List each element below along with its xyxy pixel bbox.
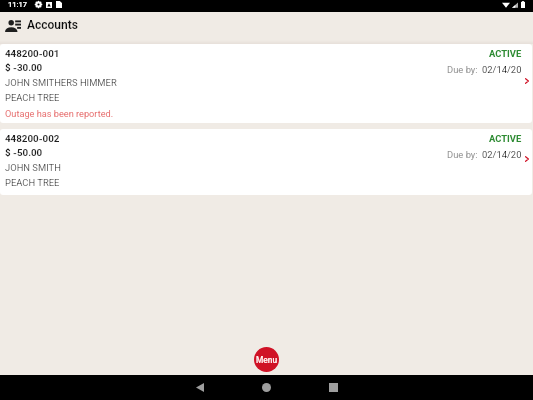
staticText: $ -50.00	[5, 147, 43, 158]
staticText: Due by:	[447, 64, 478, 75]
button[interactable]: Home	[255, 376, 278, 399]
staticText: PEACH TREE	[5, 92, 60, 103]
staticText: Accounts	[27, 18, 78, 32]
button[interactable]: Back	[188, 376, 211, 399]
staticText: 448200-001	[5, 48, 60, 59]
staticText: Menu	[256, 355, 278, 365]
staticText: Due by:	[447, 149, 478, 160]
staticText: JOHN SMITH	[5, 162, 61, 173]
staticText: $ -30.00	[5, 62, 43, 73]
button[interactable]: Recents	[322, 376, 345, 399]
staticText: 02/14/20	[482, 64, 522, 75]
staticText: ACTIVE	[489, 48, 522, 59]
staticText: Outage has been reported.	[5, 108, 114, 119]
staticText: ACTIVE	[489, 133, 522, 144]
staticText: 448200-002	[5, 133, 60, 144]
staticText: 11:17	[8, 0, 28, 9]
button[interactable]: 448200-001	[0, 44, 532, 123]
staticText: JOHN SMITHERS HIMMER	[5, 77, 117, 88]
button[interactable]: 448200-002	[0, 129, 532, 195]
staticText: PEACH TREE	[5, 177, 60, 188]
staticText: 02/14/20	[482, 149, 522, 160]
button[interactable]: Menu	[254, 347, 279, 372]
